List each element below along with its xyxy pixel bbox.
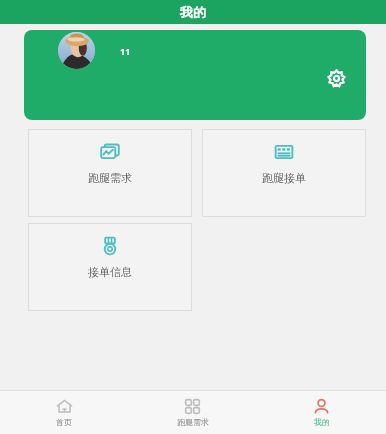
button[interactable]: Settings [322,64,350,92]
staticText: 我的 [180,4,206,20]
button[interactable]: Profile photo [24,30,366,120]
button[interactable]: 跑腿接单 [202,129,366,217]
button[interactable]: 跑腿需求 [28,129,192,217]
staticText: 跑腿需求 [88,171,132,185]
staticText: 跑腿需求 [177,417,209,427]
button[interactable]: 首页 [0,390,128,434]
staticText: 首页 [56,417,72,427]
button[interactable]: 我的 [257,390,386,434]
staticText: 我的 [314,417,330,427]
button[interactable]: Profile photo [58,32,95,69]
button[interactable]: 接单信息 [28,223,192,311]
staticText: 接单信息 [88,265,132,279]
button[interactable]: 跑腿需求 [128,390,257,434]
staticText: 11 [120,45,131,57]
staticText: 跑腿接单 [262,171,306,185]
